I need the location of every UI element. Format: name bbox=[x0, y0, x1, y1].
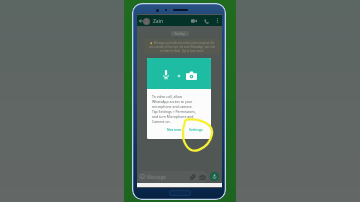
button[interactable]: Record voice message bbox=[210, 172, 219, 181]
staticText: 🔒 Messages and calls are end-to-end encr… bbox=[148, 41, 216, 53]
button[interactable]: 🔒 Messages and calls are end-to-end encr… bbox=[144, 39, 220, 54]
other: Emoji bbox=[140, 174, 145, 179]
button[interactable]: Back bbox=[137, 17, 144, 24]
button[interactable]: Home bbox=[169, 190, 191, 196]
button[interactable]: Video call bbox=[190, 17, 198, 25]
staticText: Zain bbox=[153, 18, 164, 25]
staticText: Today bbox=[174, 31, 186, 36]
button[interactable]: Attach bbox=[189, 174, 196, 181]
button[interactable]: Emoji bbox=[138, 171, 208, 183]
button[interactable]: More options bbox=[214, 17, 220, 23]
button[interactable]: Camera bbox=[199, 174, 206, 181]
staticText: To video call, allow WhatsApp access to … bbox=[152, 94, 199, 124]
staticText: Not now bbox=[167, 127, 182, 132]
staticText: Message bbox=[147, 174, 166, 180]
staticText: Settings bbox=[189, 127, 203, 132]
button[interactable]: Zain bbox=[153, 18, 164, 25]
button[interactable]: Voice call bbox=[202, 17, 210, 25]
button[interactable]: Not now bbox=[166, 126, 183, 133]
button[interactable]: Contact photo bbox=[143, 18, 150, 25]
button[interactable]: Today bbox=[174, 31, 186, 36]
button[interactable]: Settings bbox=[188, 126, 204, 133]
